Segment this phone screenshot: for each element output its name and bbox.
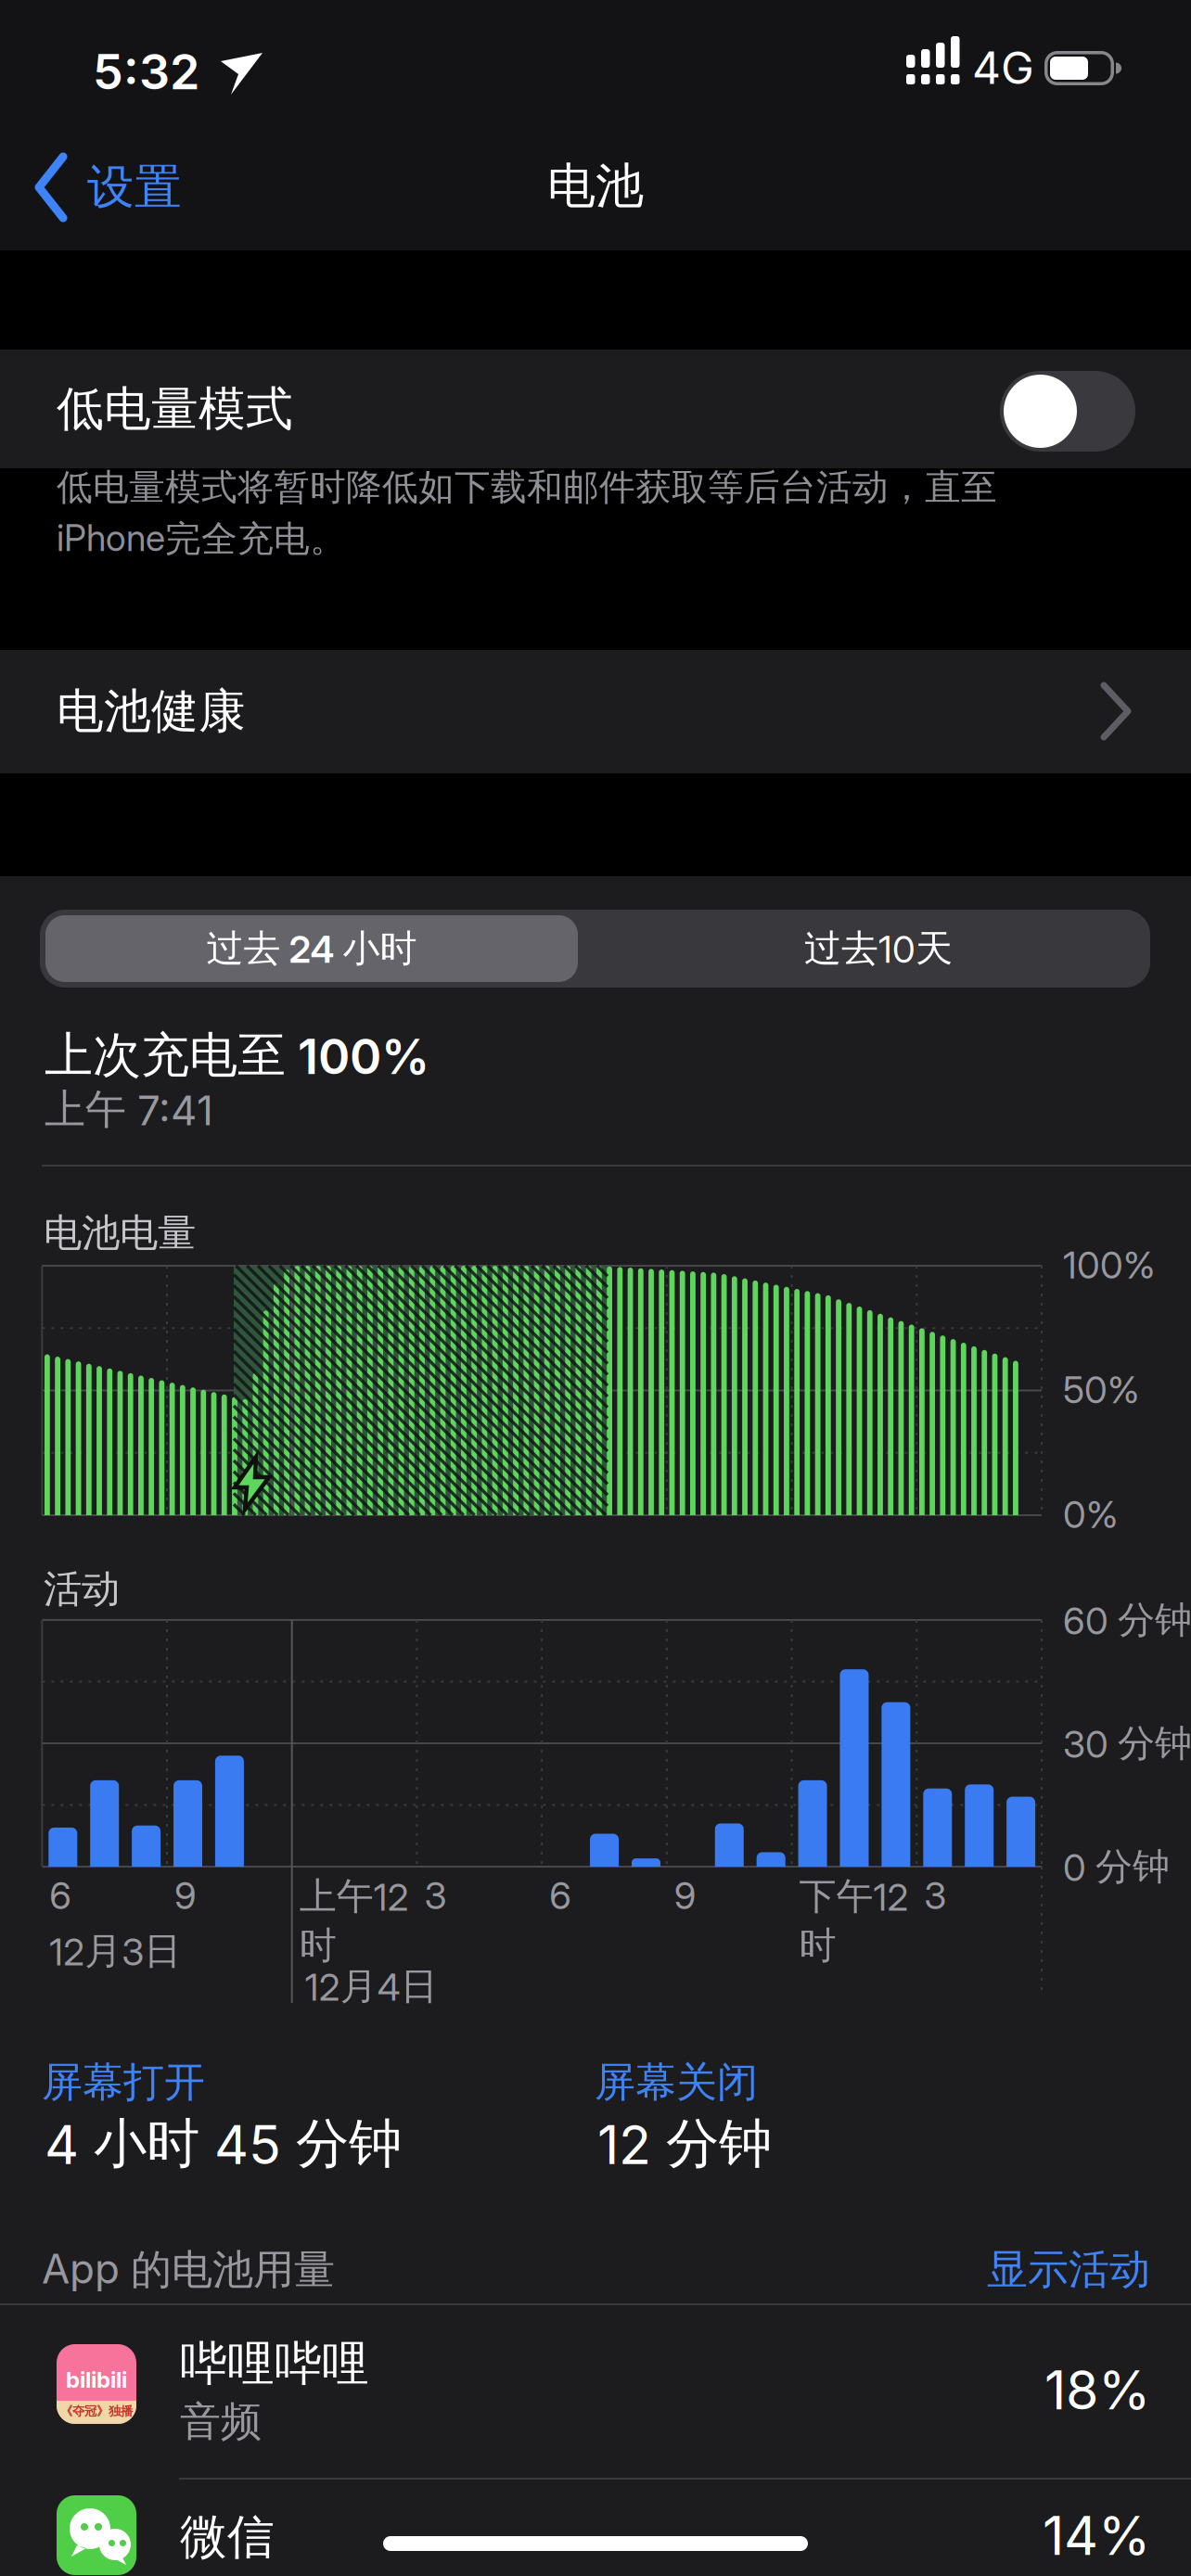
staticText: 显示活动 <box>987 2245 1150 2295</box>
button[interactable]: bilibili <box>0 2305 1191 2479</box>
staticText: 过去 24 小时 <box>206 926 417 971</box>
staticText: 下午12 <box>799 1874 909 1919</box>
staticText: 4 小时 45 分钟 <box>45 2111 402 2176</box>
staticText: 3 <box>424 1874 447 1917</box>
staticText: 12月4日 <box>305 1964 438 2009</box>
staticText: 时 <box>299 1923 336 1968</box>
staticText: 屏幕关闭 <box>595 2057 758 2107</box>
staticText: 上午12 <box>299 1874 409 1919</box>
button[interactable]: 电池健康 <box>0 650 1191 2576</box>
staticText: 18% <box>1044 2359 1150 2421</box>
staticText: 12 分钟 <box>597 2111 772 2176</box>
staticText: 活动 <box>44 1566 120 1613</box>
button[interactable]: 微信 <box>0 2480 1191 2576</box>
staticText: 100% <box>1063 1243 1155 1287</box>
staticText: 设置 <box>87 158 182 216</box>
staticText: 4G <box>972 41 1034 94</box>
staticText: App 的电池用量 <box>42 2245 335 2295</box>
staticText: 电池健康 <box>57 682 246 740</box>
staticText: bilibili <box>66 2366 127 2393</box>
staticText: 50% <box>1063 1368 1139 1412</box>
staticText: 6 <box>49 1874 72 1917</box>
staticText: 低电量模式 <box>57 380 293 438</box>
button[interactable]: 返回设置 <box>35 154 182 221</box>
staticText: 音频 <box>180 2397 262 2447</box>
staticText: 6 <box>549 1874 571 1917</box>
staticText: 过去10天 <box>804 926 953 971</box>
staticText: 5:32 <box>93 43 199 100</box>
staticText: 0% <box>1063 1493 1118 1536</box>
button[interactable]: 低电量模式 <box>1000 371 1135 452</box>
staticText: 时 <box>799 1923 836 1968</box>
staticText: 低电量模式将暂时降低如下载和邮件获取等后台活动，直至 iPhone完全充电。 <box>57 465 997 561</box>
staticText: 屏幕打开 <box>42 2057 205 2107</box>
staticText: 上午 7:41 <box>45 1084 213 1135</box>
staticText: 0 分钟 <box>1063 1844 1170 1890</box>
button[interactable]: 过去 24 小时 <box>45 915 578 982</box>
staticText: 14% <box>1043 2504 1150 2567</box>
button[interactable]: 显示活动 <box>872 2245 1150 2295</box>
staticText: 电池电量 <box>44 1210 196 1257</box>
staticText: 上次充电至 100% <box>45 1026 429 1085</box>
staticText: 电池 <box>547 156 644 216</box>
button[interactable]: 过去10天 <box>612 915 1145 982</box>
staticText: 3 <box>924 1874 946 1917</box>
staticText: 微信 <box>180 2508 275 2566</box>
staticText: 12月3日 <box>49 1928 181 1974</box>
staticText: 哔哩哔哩 <box>180 2335 369 2392</box>
staticText: 9 <box>174 1874 197 1917</box>
staticText: 《夺冠》独播 <box>60 2404 133 2419</box>
staticText: 30 分钟 <box>1063 1721 1191 1766</box>
staticText: 60 分钟 <box>1063 1597 1191 1643</box>
staticText: 9 <box>674 1874 697 1917</box>
